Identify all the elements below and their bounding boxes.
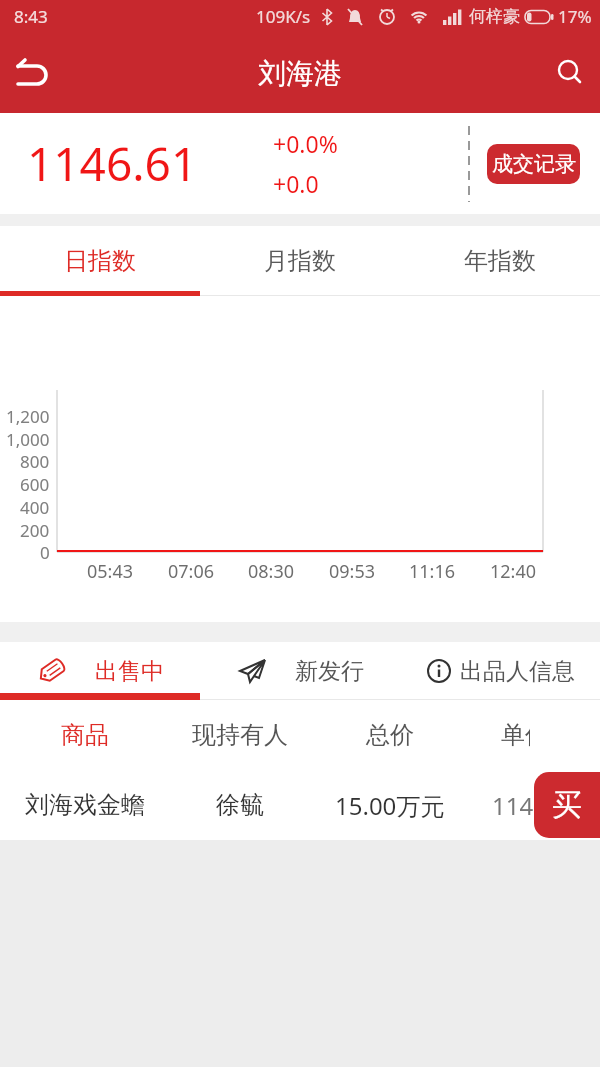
staticText: 05:43 [87,559,134,584]
button[interactable]: 年指数 [400,226,600,296]
staticText: 1146.1 [492,789,568,822]
staticText: 出售中 [95,657,164,686]
button[interactable]: 买 [534,772,600,838]
staticText: 400 [20,496,50,519]
button[interactable]: 新发行 [200,642,400,700]
staticText: 商品 [61,720,109,750]
staticText: 09:53 [329,559,376,584]
staticText: 总价 [366,720,414,750]
staticText: 刘海戏金蟾 [25,790,145,820]
staticText: 1,200 [6,405,50,428]
button[interactable]: 月指数 [200,226,400,296]
staticText: 年指数 [464,246,536,276]
staticText: 12:40 [490,559,537,584]
staticText: 109K/s [256,5,311,28]
button[interactable] [8,49,56,97]
button[interactable] [548,51,592,95]
button[interactable]: 出售中 [0,642,200,700]
staticText: 1146.61 [27,132,198,195]
button[interactable]: 成交记录 [487,144,580,184]
staticText: 出品人信息 [460,657,575,686]
staticText: 15.00万元 [335,789,445,822]
staticText: 200 [20,519,50,542]
button[interactable]: 出品人信息 [400,642,600,700]
staticText: 8:43 [14,5,48,28]
staticText: 800 [20,450,50,473]
staticText: 08:30 [248,559,295,584]
staticText: 现持有人 [192,720,288,750]
staticText: 何梓豪 [469,6,520,27]
staticText: 07:06 [168,559,215,584]
staticText: 月指数 [264,246,336,276]
staticText: +0.0% [273,128,338,159]
staticText: 600 [20,473,50,496]
staticText: 1,000 [6,428,50,451]
staticText: 新发行 [295,657,364,686]
staticText: 刘海港 [258,56,342,91]
button[interactable]: 日指数 [0,226,200,296]
staticText: 日指数 [64,246,136,276]
staticText: 0 [40,541,50,564]
staticText: 徐毓 [216,790,264,820]
staticText: 11:16 [409,559,456,584]
button[interactable]: 刘海戏金蟾 [0,770,600,840]
staticText: +0.0 [273,168,319,199]
staticText: 单价 [501,720,530,750]
staticText: 买 [552,786,582,824]
staticText: 成交记录 [492,151,576,177]
staticText: 17% [558,5,592,28]
